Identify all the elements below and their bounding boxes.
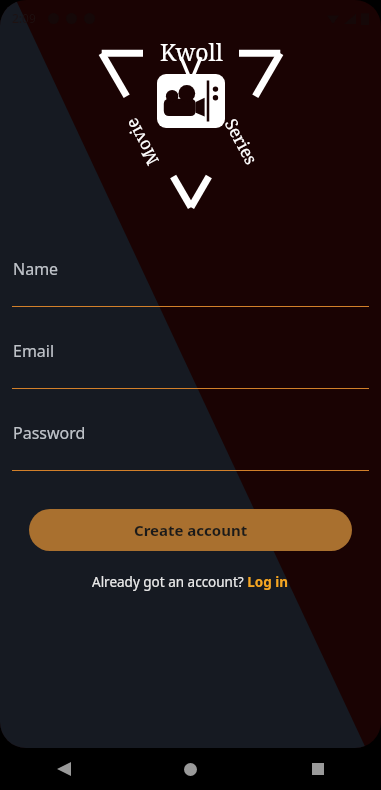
- staticText: Email: [13, 340, 55, 362]
- button[interactable]: Already got an account? Log in: [0, 573, 381, 591]
- button[interactable]: Home: [127, 748, 254, 790]
- staticText: Already got an account? Log in: [92, 573, 289, 591]
- button[interactable]: Back: [0, 748, 127, 790]
- button[interactable]: Create account: [29, 509, 352, 551]
- button[interactable]: Recent apps: [254, 748, 381, 790]
- button[interactable]: Password: [0, 422, 381, 471]
- staticText: Name: [13, 258, 59, 280]
- button[interactable]: Email: [0, 340, 381, 389]
- staticText: 2:09: [12, 10, 36, 26]
- staticText: Create account: [134, 520, 248, 540]
- staticText: Series: [220, 114, 263, 169]
- staticText: Password: [13, 422, 86, 444]
- staticText: Movie: [119, 114, 164, 169]
- staticText: Kwoll: [160, 36, 223, 67]
- button[interactable]: Name: [0, 258, 381, 307]
